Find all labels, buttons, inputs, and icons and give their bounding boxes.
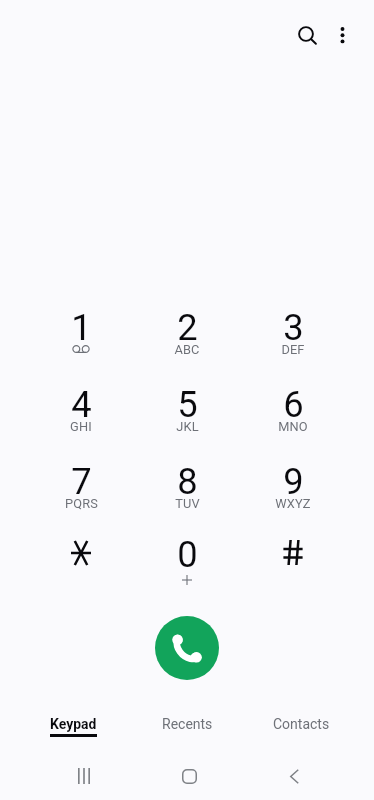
button[interactable]: Search — [284, 13, 328, 57]
staticText: ABC — [174, 342, 200, 357]
staticText: 7 — [71, 460, 92, 500]
staticText: 9 — [283, 460, 304, 500]
button[interactable]: Recents — [130, 716, 244, 732]
button[interactable] — [28, 525, 134, 599]
staticText: JKL — [176, 419, 199, 434]
button[interactable] — [240, 452, 346, 526]
staticText: Keypad — [50, 716, 97, 732]
button[interactable] — [28, 298, 134, 372]
button[interactable] — [134, 452, 240, 526]
staticText: PQRS — [65, 496, 98, 511]
button[interactable] — [28, 375, 134, 449]
staticText: 6 — [283, 383, 304, 423]
staticText: GHI — [70, 419, 92, 434]
staticText: 2 — [177, 306, 198, 346]
button[interactable]: Call — [155, 616, 219, 680]
staticText: 4 — [71, 383, 92, 423]
staticText: 1 — [71, 306, 92, 346]
button[interactable] — [28, 452, 134, 526]
button[interactable] — [240, 525, 346, 599]
button[interactable]: Keypad — [16, 716, 130, 737]
button[interactable]: Home — [169, 756, 209, 796]
button[interactable]: Back — [274, 756, 314, 796]
staticText: 0 — [177, 533, 198, 573]
button[interactable] — [240, 298, 346, 372]
button[interactable]: Contacts — [244, 716, 358, 732]
button[interactable]: More options — [320, 13, 364, 57]
button[interactable] — [134, 525, 240, 599]
staticText: MNO — [278, 419, 308, 434]
button[interactable] — [134, 375, 240, 449]
staticText: WXYZ — [275, 496, 311, 511]
staticText: DEF — [281, 342, 305, 357]
button[interactable] — [240, 375, 346, 449]
staticText: TUV — [175, 496, 200, 511]
button[interactable] — [134, 298, 240, 372]
staticText: 5 — [177, 383, 198, 423]
staticText: 8 — [177, 460, 198, 500]
staticText: Contacts — [273, 716, 330, 732]
button[interactable]: Recent apps — [64, 756, 104, 796]
staticText: 3 — [283, 306, 304, 346]
staticText: Recents — [162, 716, 213, 732]
